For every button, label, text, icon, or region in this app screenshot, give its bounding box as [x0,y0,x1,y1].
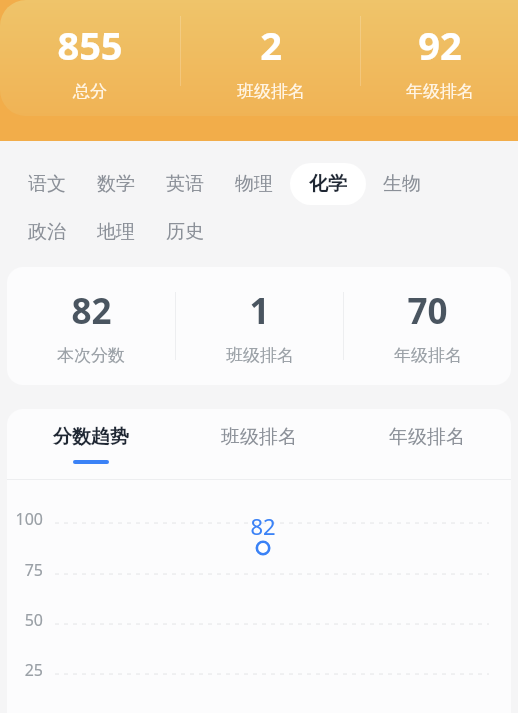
button[interactable]: 化学 [290,163,366,205]
staticText: 100 [7,508,43,530]
staticText: 总分 [73,81,107,102]
staticText: 历史 [166,220,204,244]
staticText: 本次分数 [57,345,125,366]
button[interactable]: 班级排名 [175,409,343,479]
staticText: 855 [57,19,123,71]
staticText: 92 [418,19,462,71]
button[interactable]: 70 [344,267,511,385]
staticText: 分数趋势 [53,425,129,449]
staticText: 25 [7,659,43,681]
staticText: 地理 [97,220,135,244]
staticText: 2 [260,19,282,71]
button[interactable]: 数学 [83,163,149,205]
button[interactable]: 分数趋势 [7,409,175,479]
button[interactable]: 855 [0,0,180,116]
staticText: 82 [250,511,276,541]
button[interactable]: 2 [181,0,360,116]
staticText: 生物 [383,172,421,196]
staticText: 班级排名 [226,345,294,366]
button[interactable]: 政治 [14,211,80,253]
staticText: 年级排名 [406,81,474,102]
button[interactable]: 年级排名 [343,409,511,479]
staticText: 英语 [166,172,204,196]
button[interactable]: 92 [361,0,518,116]
button[interactable]: 历史 [152,211,218,253]
staticText: 班级排名 [221,425,297,449]
staticText: 数学 [97,172,135,196]
staticText: 化学 [309,172,347,196]
staticText: 1 [249,287,270,335]
staticText: 82 [71,287,112,335]
staticText: 年级排名 [389,425,465,449]
staticText: 50 [7,609,43,631]
button[interactable]: 语文 [14,163,80,205]
staticText: 政治 [28,220,66,244]
staticText: 物理 [235,172,273,196]
staticText: 75 [7,559,43,581]
button[interactable]: 英语 [152,163,218,205]
staticText: 班级排名 [237,81,305,102]
button[interactable]: 地理 [83,211,149,253]
staticText: 70 [407,287,448,335]
staticText: 语文 [28,172,66,196]
button[interactable]: 物理 [221,163,287,205]
staticText: 年级排名 [394,345,462,366]
button[interactable]: 生物 [369,163,435,205]
button[interactable]: 82 [7,267,175,385]
button[interactable]: 1 [176,267,343,385]
